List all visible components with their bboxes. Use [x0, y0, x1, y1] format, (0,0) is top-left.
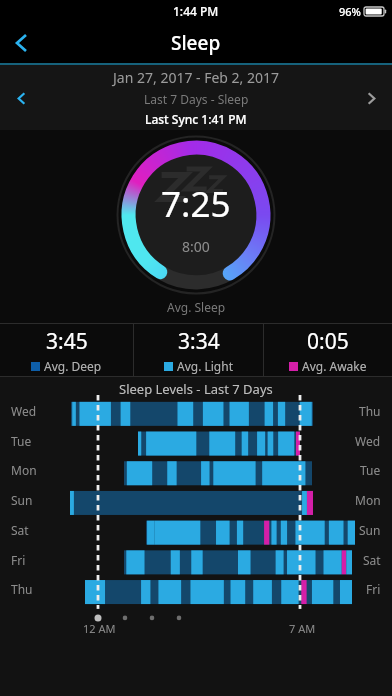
button[interactable]: 3:34 [134, 324, 263, 376]
staticText: Sleep [171, 30, 221, 56]
staticText: Wed [355, 433, 381, 449]
staticText: 8:00 [182, 237, 210, 256]
button[interactable]: Next week [350, 77, 392, 119]
staticText: Fri [11, 552, 26, 568]
staticText: Sun [11, 492, 33, 508]
button[interactable]: Previous week [0, 77, 42, 119]
staticText: Wed [11, 403, 37, 419]
button[interactable]: 0:05 [264, 324, 392, 376]
staticText: Mon [11, 462, 37, 478]
button[interactable]: 3:45 [0, 324, 133, 376]
staticText: Avg. Deep [44, 358, 102, 374]
staticText: 0:05 [307, 327, 349, 356]
staticText: Mon [355, 492, 381, 508]
staticText: Sleep Levels - Last 7 Days [119, 380, 273, 398]
button[interactable] [0, 377, 392, 696]
staticText: Tue [360, 462, 381, 478]
staticText: 12 AM [83, 621, 116, 636]
staticText: 7 AM [289, 621, 316, 636]
staticText: Avg. Light [177, 358, 233, 374]
staticText: Last 7 Days - Sleep [144, 91, 249, 107]
staticText: Sun [359, 522, 381, 538]
staticText: Thu [359, 403, 381, 419]
staticText: Fri [366, 581, 381, 597]
staticText: 7:25 [161, 180, 231, 228]
staticText: 3:45 [46, 327, 88, 356]
staticText: 1:44 PM [173, 3, 219, 19]
staticText: Sat [363, 552, 381, 568]
staticText: Tue [11, 433, 32, 449]
staticText: Avg. Awake [302, 358, 367, 374]
staticText: 3:34 [178, 327, 220, 356]
staticText: Jan 27, 2017 - Feb 2, 2017 [113, 68, 280, 87]
button[interactable]: Back [0, 22, 44, 63]
staticText: Sat [11, 522, 29, 538]
staticText: 96% [339, 4, 361, 19]
staticText: Avg. Sleep [167, 299, 226, 315]
staticText: Last Sync 1:41 PM [145, 111, 247, 127]
staticText: Thu [11, 581, 33, 597]
